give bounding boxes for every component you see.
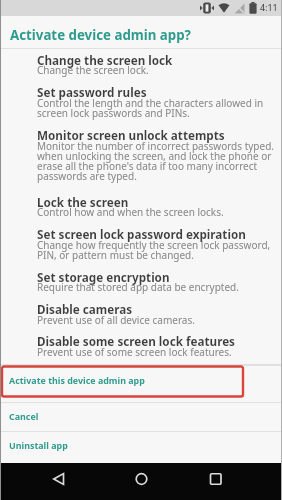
staticText: Activate this device admin app — [9, 374, 145, 386]
staticText: Lock the screen — [37, 194, 129, 210]
staticText: Change the screen lock. — [37, 63, 149, 77]
staticText: Disable cameras — [37, 301, 133, 317]
staticText: Require that stored app data be encrypte… — [37, 280, 239, 294]
staticText: Control how and when the screen locks. — [37, 205, 224, 219]
staticText: Activate device admin app? — [10, 26, 191, 44]
button[interactable]: Cancel — [0, 403, 282, 432]
button[interactable] — [134, 470, 149, 488]
staticText: Uninstall app — [9, 439, 68, 451]
staticText: Set password rules — [37, 84, 147, 100]
staticText: Set storage encryption — [37, 269, 170, 285]
staticText: Disable some screen lock features — [37, 333, 235, 349]
staticText: Prevent use of all device cameras. — [37, 313, 195, 327]
staticText: Prevent use of some screen lock features… — [37, 345, 232, 359]
button[interactable] — [209, 470, 223, 488]
staticText: 4:11 — [260, 2, 278, 14]
staticText: Monitor the number of incorrect password… — [37, 139, 274, 183]
button[interactable]: Activate this device admin app — [0, 365, 282, 402]
staticText: Change how frequently the screen lock pa… — [37, 238, 271, 262]
staticText: Set screen lock password expiration — [37, 226, 246, 242]
staticText: Monitor screen unlock attempts — [37, 127, 225, 143]
staticText: Change the screen lock — [37, 52, 173, 68]
staticText: Cancel — [9, 410, 39, 422]
button[interactable] — [52, 470, 66, 488]
button[interactable]: Uninstall app — [0, 432, 282, 463]
staticText: Control the length and the characters al… — [37, 96, 264, 120]
